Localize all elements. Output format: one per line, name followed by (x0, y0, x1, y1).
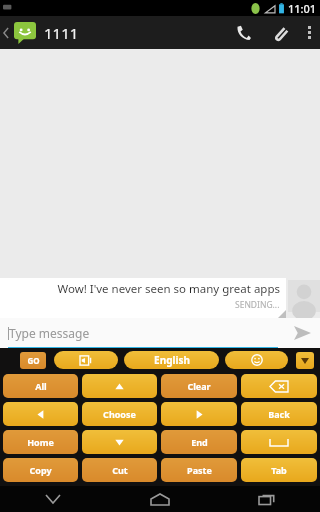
button[interactable]: Wow! I've never seen so many great apps (0, 278, 286, 318)
button[interactable]: Space (241, 430, 317, 454)
button[interactable]: Attach (262, 16, 298, 49)
staticText: Choose (103, 408, 136, 420)
button[interactable]: End (161, 430, 237, 454)
button[interactable]: Home (106, 486, 213, 512)
button[interactable]: Tab (241, 458, 317, 482)
staticText: English (154, 353, 190, 367)
button[interactable]: Backspace (241, 374, 317, 398)
button[interactable]: Paste (161, 458, 237, 482)
staticText: Cut (112, 464, 128, 476)
button[interactable]: Choose (82, 402, 157, 426)
staticText: All (35, 380, 47, 392)
button[interactable]: Send (284, 318, 320, 348)
button[interactable]: Clear (161, 374, 237, 398)
staticText: Home (27, 436, 54, 448)
staticText: 1111 (44, 23, 79, 43)
staticText: End (191, 436, 208, 448)
button[interactable]: English (124, 351, 219, 369)
staticText: Back (268, 408, 290, 420)
button[interactable]: Call (224, 16, 262, 49)
button[interactable]: Copy (3, 458, 78, 482)
button[interactable]: GO (20, 352, 46, 369)
button[interactable]: Type message (8, 318, 278, 348)
button[interactable]: Voice input (54, 351, 118, 369)
staticText: Tab (271, 464, 287, 476)
staticText: Type message (9, 325, 90, 341)
staticText: Wow! I've never seen so many great apps (57, 281, 280, 297)
staticText: SENDING... (235, 299, 280, 311)
staticText: 11:01 (288, 1, 317, 16)
button[interactable]: Left (3, 402, 78, 426)
button[interactable]: Up (82, 374, 157, 398)
button[interactable]: Home (3, 430, 78, 454)
button[interactable]: All (3, 374, 78, 398)
button[interactable]: Recent apps (213, 486, 320, 512)
button[interactable]: More options (298, 16, 320, 49)
button[interactable]: Cut (82, 458, 157, 482)
staticText: Paste (187, 464, 212, 476)
button[interactable]: Back (241, 402, 317, 426)
button[interactable]: Hide keyboard (0, 486, 106, 512)
button[interactable]: Right (161, 402, 237, 426)
button[interactable]: Back (0, 16, 12, 49)
button[interactable]: Hide keyboard (296, 352, 314, 369)
staticText: Copy (29, 464, 52, 476)
staticText: Clear (187, 380, 211, 392)
staticText: GO (27, 355, 40, 366)
button[interactable]: Emoji (225, 351, 288, 369)
button[interactable]: Down (82, 430, 157, 454)
